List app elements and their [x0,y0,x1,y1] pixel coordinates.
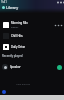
button[interactable]: Chill Hits [0,32,64,40]
button[interactable]: Home [2,90,6,94]
button[interactable]: Daily Drive [0,43,64,51]
button[interactable]: More options [56,23,61,28]
staticText: Speaker [10,65,21,69]
staticText: Playlist [11,26,19,29]
staticText: 9:41 [1,0,7,4]
staticText: Recently played [2,54,23,58]
staticText: Morning Mix [11,21,28,25]
button[interactable]: Speaker [0,63,64,71]
staticText: Daily Drive [11,45,26,49]
staticText: Now playing [16,82,30,85]
button[interactable]: Morning Mix [0,21,64,29]
staticText: Chill Hits [11,34,23,38]
staticText: Library [6,5,19,10]
